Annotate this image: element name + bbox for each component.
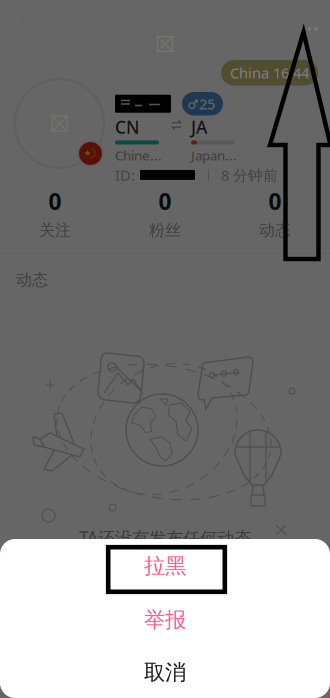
button[interactable]: 25 — [182, 92, 223, 115]
staticText: 0 — [158, 186, 171, 216]
staticText: TA还没有发布任何动态 — [79, 526, 251, 549]
staticText: 粉丝 — [149, 220, 181, 240]
staticText: ID: — [115, 165, 135, 185]
staticText: 0 — [268, 186, 281, 216]
staticText: 0 — [48, 186, 61, 216]
image — [157, 36, 173, 52]
staticText: 25 — [199, 94, 215, 113]
button[interactable]: 取消 — [0, 647, 330, 698]
staticText: 动态 — [16, 270, 48, 290]
staticText: JA — [191, 115, 207, 138]
button[interactable]: 0 — [110, 180, 220, 246]
staticText: 8 分钟前 — [221, 165, 278, 185]
staticText: CN — [115, 115, 139, 138]
button[interactable]: 拉黑 — [0, 539, 330, 593]
staticText: 取消 — [144, 659, 186, 686]
staticText: China 16:44 — [230, 63, 309, 82]
staticText: 举报 — [144, 607, 186, 633]
button[interactable]: 举报 — [0, 593, 330, 647]
button[interactable]: 0 — [220, 180, 330, 246]
staticText: 关注 — [39, 220, 71, 240]
staticText: 拉黑 — [144, 553, 186, 579]
staticText: Japan... — [191, 146, 237, 164]
image — [51, 115, 67, 131]
button[interactable]: More options — [283, 0, 330, 45]
button[interactable]: 0 — [0, 180, 110, 246]
staticText: 动态 — [259, 220, 291, 240]
staticText: Chine... — [115, 146, 162, 164]
